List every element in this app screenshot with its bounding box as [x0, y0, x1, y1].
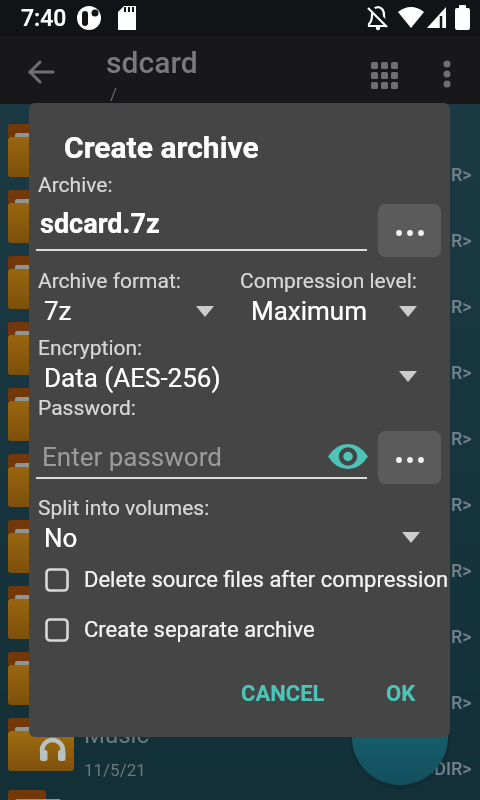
staticText: <DIR>: [425, 626, 472, 647]
staticText: Split into volumes:: [38, 496, 210, 521]
staticText: Archive format:: [38, 269, 181, 294]
button[interactable]: CANCEL: [225, 671, 340, 717]
staticText: <DIR>: [425, 692, 472, 713]
button[interactable]: [240, 295, 445, 331]
button[interactable]: [0, 254, 480, 318]
staticText: Compression level:: [240, 269, 417, 294]
staticText: <DIR>: [425, 230, 472, 251]
staticText: 11/5/21: [84, 166, 146, 186]
button[interactable]: [36, 431, 326, 481]
staticText: <DIR>: [425, 560, 472, 581]
button[interactable]: [378, 431, 441, 484]
staticText: OK: [386, 681, 416, 707]
staticText: 11/5/21: [84, 364, 146, 384]
staticText: Download: [84, 457, 191, 485]
staticText: Create separate archive: [84, 617, 315, 643]
staticText: sdcard.7z: [40, 208, 160, 240]
staticText: sdcard: [106, 45, 198, 80]
staticText: Enter password: [42, 442, 222, 472]
staticText: 11/5/21: [84, 628, 146, 648]
button[interactable]: [38, 521, 418, 559]
staticText: Maximum: [251, 296, 367, 326]
staticText: 11/5/21: [84, 760, 146, 780]
staticText: 11/5/21: [84, 232, 146, 252]
staticText: CANCEL: [241, 681, 325, 707]
button[interactable]: [328, 444, 368, 469]
staticText: Data (AES-256): [44, 363, 221, 393]
staticText: <DIR>: [425, 362, 472, 383]
button[interactable]: [360, 51, 408, 99]
staticText: /: [110, 84, 118, 104]
staticText: 7z: [44, 296, 72, 326]
staticText: <DIR>: [425, 296, 472, 317]
staticText: 7:40: [21, 5, 67, 32]
button[interactable]: Delete source files after compression: [45, 563, 435, 597]
button[interactable]: [38, 361, 418, 397]
staticText: <DIR>: [425, 494, 472, 515]
button[interactable]: [0, 122, 480, 186]
staticText: 11/5/21: [84, 496, 146, 516]
staticText: <DIR>: [425, 164, 472, 185]
button[interactable]: [352, 689, 448, 785]
button[interactable]: [36, 201, 373, 251]
staticText: Alarms: [84, 127, 161, 155]
button[interactable]: [0, 320, 480, 384]
staticText: Delete source files after compression: [84, 567, 449, 593]
button[interactable]: [0, 188, 480, 252]
staticText: Create archive: [64, 130, 259, 165]
staticText: Password:: [38, 396, 136, 421]
button[interactable]: Create separate archive: [45, 613, 435, 647]
button[interactable]: [0, 584, 480, 648]
button[interactable]: [424, 51, 472, 99]
staticText: Documents: [84, 391, 207, 419]
staticText: Encryption:: [38, 336, 143, 361]
button[interactable]: [0, 386, 480, 450]
button[interactable]: [0, 518, 480, 582]
button[interactable]: [17, 48, 65, 96]
button[interactable]: [38, 295, 223, 331]
button[interactable]: OK: [359, 671, 443, 717]
staticText: DCIM: [84, 325, 143, 353]
staticText: Android: [84, 193, 168, 221]
staticText: <DIR>: [425, 428, 472, 449]
button[interactable]: [0, 650, 480, 714]
staticText: Books: [84, 259, 151, 287]
staticText: <DIR>: [425, 758, 472, 779]
staticText: Music: [84, 721, 149, 749]
button[interactable]: [378, 204, 441, 257]
staticText: Archive:: [38, 173, 113, 198]
staticText: 11/5/21: [84, 562, 146, 582]
staticText: No: [44, 523, 78, 553]
button[interactable]: [0, 452, 480, 516]
button[interactable]: [0, 716, 480, 780]
